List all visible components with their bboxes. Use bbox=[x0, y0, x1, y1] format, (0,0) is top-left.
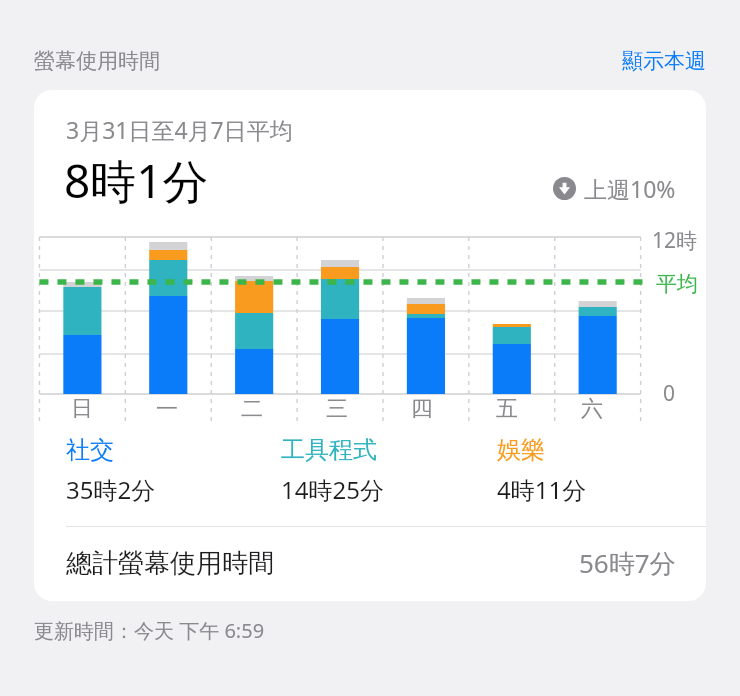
button[interactable]: 娛樂 bbox=[497, 435, 682, 506]
staticText: 社交 bbox=[66, 435, 114, 465]
staticText: 3月31日至4月7日平均 bbox=[66, 114, 293, 145]
button[interactable]: 總計螢幕使用時間 bbox=[34, 527, 706, 601]
staticText: 0 bbox=[663, 379, 676, 408]
button[interactable]: 顯示本週 bbox=[622, 48, 706, 74]
staticText: 四 bbox=[411, 395, 433, 423]
staticText: 一 bbox=[156, 395, 178, 423]
button[interactable]: 3月31日至4月7日平均 bbox=[34, 90, 706, 601]
staticText: 35時2分 bbox=[66, 473, 156, 506]
staticText: 三 bbox=[326, 395, 348, 423]
staticText: 更新時間：今天 下午 6:59 bbox=[34, 617, 265, 644]
staticText: 二 bbox=[241, 395, 263, 423]
staticText: 螢幕使用時間 bbox=[34, 48, 160, 74]
staticText: 五 bbox=[496, 395, 518, 423]
staticText: 平均 bbox=[656, 271, 698, 297]
button[interactable]: 工具程式 bbox=[281, 435, 497, 506]
staticText: 12時 bbox=[652, 226, 698, 255]
staticText: 總計螢幕使用時間 bbox=[66, 547, 274, 580]
staticText: 日 bbox=[71, 395, 93, 423]
staticText: 14時25分 bbox=[281, 473, 384, 506]
staticText: 4時11分 bbox=[497, 473, 587, 506]
other: Decrease from last week bbox=[553, 177, 576, 200]
staticText: 工具程式 bbox=[281, 435, 377, 465]
staticText: 上週10% bbox=[584, 173, 676, 204]
button[interactable]: 社交 bbox=[66, 435, 281, 506]
staticText: 56時7分 bbox=[579, 545, 676, 581]
staticText: 六 bbox=[581, 395, 603, 423]
staticText: 顯示本週 bbox=[622, 48, 706, 74]
staticText: 8時1分 bbox=[64, 149, 209, 212]
staticText: 娛樂 bbox=[497, 435, 545, 465]
